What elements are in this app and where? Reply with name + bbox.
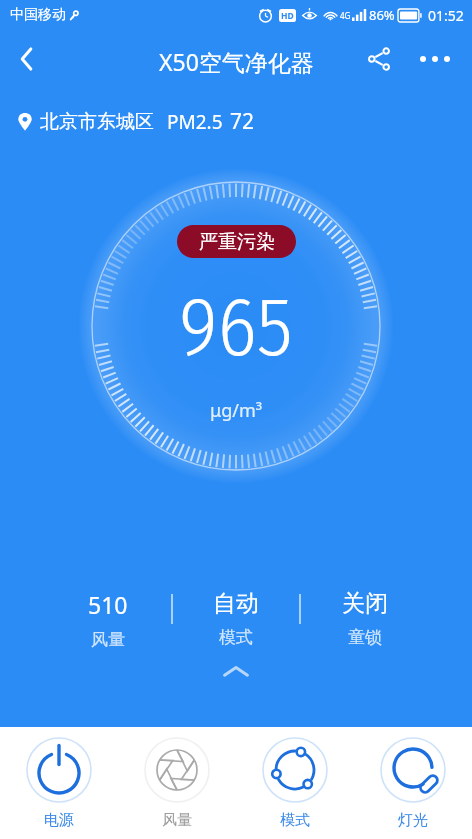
staticText: μg/m³ xyxy=(210,398,263,423)
button[interactable]: 关闭 xyxy=(310,589,420,651)
button[interactable]: 灯光 xyxy=(367,732,459,835)
staticText: 模式 xyxy=(219,627,253,648)
staticText: 72 xyxy=(230,107,255,136)
staticText: 灯光 xyxy=(398,811,428,830)
staticText: 北京市东城区 xyxy=(40,110,154,134)
staticText: 风量 xyxy=(91,629,125,650)
staticText: 关闭 xyxy=(342,589,388,618)
button[interactable]: 电源 xyxy=(13,732,105,835)
staticText: 965 xyxy=(179,278,293,376)
staticText: 510 xyxy=(88,589,128,620)
staticText: HD xyxy=(281,10,294,22)
button[interactable]: 自动 xyxy=(181,589,291,651)
staticText: X50空气净化器 xyxy=(159,46,314,77)
staticText: 电源 xyxy=(44,811,74,830)
button[interactable]: Expand xyxy=(214,660,258,682)
staticText: 中国移动 xyxy=(10,6,66,24)
staticText: 自动 xyxy=(213,589,259,618)
button[interactable]: Back xyxy=(4,36,50,82)
button[interactable]: 510 xyxy=(53,589,163,651)
staticText: 风量 xyxy=(162,811,192,830)
staticText: 01:52 xyxy=(428,6,464,25)
button[interactable]: 严重污染 xyxy=(177,225,296,258)
staticText: 童锁 xyxy=(348,627,382,648)
button[interactable]: More options xyxy=(412,36,458,82)
staticText: 86% xyxy=(369,6,395,24)
button[interactable]: 模式 xyxy=(249,732,341,835)
button[interactable]: 风量 xyxy=(131,732,223,835)
staticText: 严重污染 xyxy=(199,230,275,254)
staticText: 模式 xyxy=(280,811,310,830)
staticText: 4G xyxy=(340,10,351,21)
staticText: PM2.5 xyxy=(167,109,223,135)
button[interactable]: Share xyxy=(356,36,402,82)
